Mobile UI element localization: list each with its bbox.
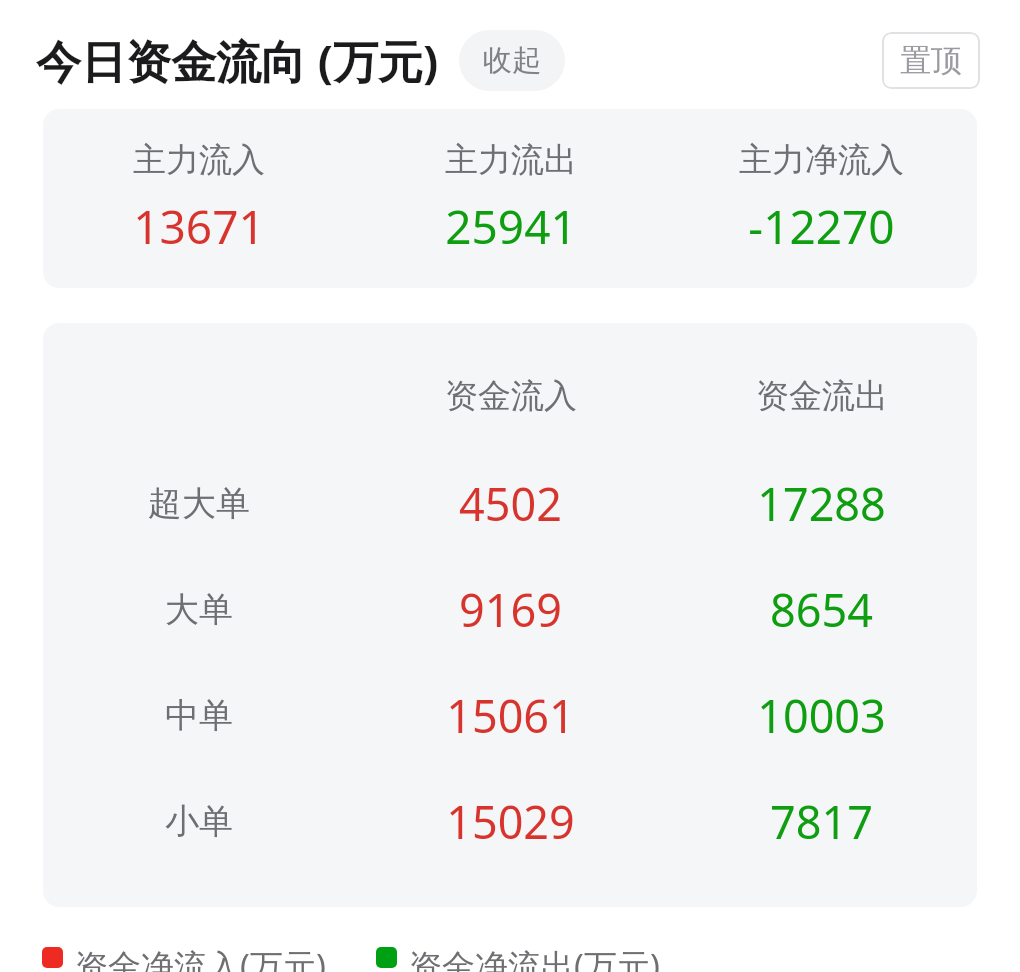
staticText: 主力流入 (133, 139, 265, 181)
staticText: 资金流出 (756, 375, 888, 417)
staticText: 资金净流出(万元) (409, 943, 660, 972)
other: 资金净流出(万元) (376, 947, 397, 968)
staticText: 8654 (770, 579, 873, 640)
button[interactable]: 资金净流入(万元) (42, 943, 326, 972)
staticText: 17288 (757, 473, 886, 534)
button[interactable]: 大单 (43, 579, 977, 640)
staticText: 超大单 (148, 482, 250, 525)
staticText: -12270 (748, 195, 895, 258)
staticText: 25941 (445, 195, 577, 258)
staticText: 资金流入 (445, 375, 577, 417)
staticText: 收起 (483, 42, 541, 79)
other: 资金净流入(万元) (42, 947, 63, 968)
staticText: 资金净流入(万元) (75, 943, 326, 972)
staticText: 15029 (446, 791, 575, 852)
staticText: 中单 (165, 694, 233, 737)
staticText: 10003 (757, 685, 886, 746)
staticText: 7817 (770, 791, 873, 852)
button[interactable]: 收起 (459, 30, 565, 91)
staticText: 9169 (459, 579, 562, 640)
staticText: 置顶 (900, 41, 962, 80)
button[interactable]: 资金流入 (43, 323, 977, 907)
staticText: 主力流出 (445, 139, 577, 181)
button[interactable]: 超大单 (43, 473, 977, 534)
button[interactable]: 中单 (43, 685, 977, 746)
staticText: 大单 (165, 588, 233, 631)
staticText: 小单 (165, 800, 233, 843)
button[interactable]: 小单 (43, 791, 977, 852)
button[interactable]: 资金净流出(万元) (376, 943, 660, 972)
staticText: 今日资金流向 (万元) (36, 30, 439, 91)
staticText: 主力净流入 (739, 139, 904, 181)
button[interactable]: 置顶 (882, 32, 980, 89)
staticText: 13671 (133, 195, 265, 258)
staticText: 15061 (446, 685, 575, 746)
staticText: 4502 (459, 473, 562, 534)
button[interactable]: 主力流入 (43, 109, 977, 288)
